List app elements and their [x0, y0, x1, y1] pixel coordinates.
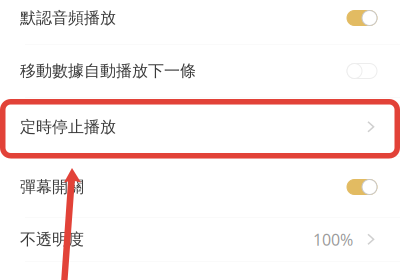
- button[interactable]: 彈幕開關: [0, 157, 400, 217]
- staticText: 不透明度: [20, 230, 84, 249]
- button[interactable]: 默認音頻播放: [0, 0, 400, 44]
- staticText: 100%: [313, 229, 353, 250]
- staticText: 移動數據自動播放下一條: [20, 61, 196, 81]
- staticText: 默認音頻播放: [20, 8, 116, 28]
- button[interactable]: 移動數據自動播放下一條: [0, 45, 400, 97]
- button[interactable]: 不透明度: [0, 218, 400, 261]
- staticText: 彈幕開關: [20, 177, 84, 197]
- staticText: 定時停止播放: [20, 117, 116, 137]
- button[interactable]: 定時停止播放: [0, 98, 400, 156]
